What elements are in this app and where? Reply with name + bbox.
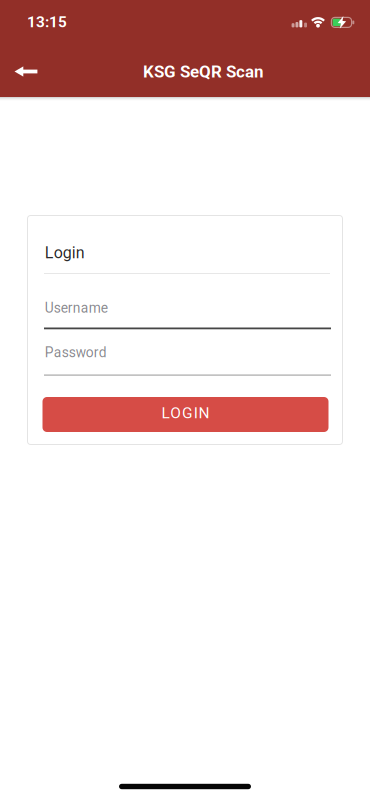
button[interactable]: Password [44,344,331,389]
button[interactable]: Username [44,300,331,345]
staticText: Password [45,344,107,361]
staticText: KSG SeQR Scan [143,62,263,81]
button[interactable]: LOGIN [42,397,328,432]
staticText: 13:15 [27,13,67,31]
staticText: Username [45,300,108,316]
staticText: Login [45,243,85,262]
staticText: LOGIN [161,404,210,422]
button[interactable]: Back [4,56,48,86]
